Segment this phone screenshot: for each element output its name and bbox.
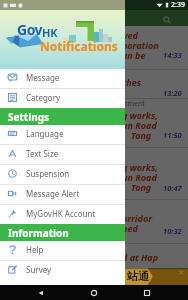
staticText: Suspension: [26, 168, 70, 179]
button[interactable]: Home: [82, 285, 106, 300]
staticText: ned: [122, 222, 188, 234]
staticText: rtment: [122, 99, 145, 109]
staticText: ches: [122, 76, 188, 88]
button[interactable]: Search: [160, 13, 174, 27]
button[interactable]: Text Size: [0, 145, 125, 164]
staticText: MyGovHK Account: [26, 208, 96, 219]
staticText: Message: [26, 72, 60, 83]
staticText: ved: [123, 29, 188, 41]
staticText: Text Size: [26, 148, 59, 159]
staticText: orridor: [122, 212, 188, 224]
staticText: 10:47: [163, 183, 188, 193]
staticText: poration: [122, 39, 188, 51]
staticText: 13:20: [163, 88, 188, 98]
button[interactable]: MyGovHK Account: [0, 205, 125, 224]
staticText: Notifications: [40, 38, 118, 54]
staticText: Survey: [26, 264, 52, 275]
button[interactable]: Help: [0, 241, 125, 260]
staticText: Tong: [131, 181, 188, 193]
button[interactable]: Message: [0, 69, 125, 88]
button[interactable]: Category: [0, 89, 125, 108]
staticText: an be: [122, 49, 188, 61]
button[interactable]: Back: [29, 285, 53, 300]
staticText: un Road: [122, 171, 188, 183]
staticText: Message Alert: [26, 188, 80, 199]
button[interactable]: Survey: [0, 261, 125, 280]
button[interactable]: Suspension: [0, 165, 125, 184]
staticText: g works,: [122, 161, 188, 173]
staticText: Information: [8, 226, 69, 240]
button[interactable]: Message Alert: [0, 185, 125, 204]
staticText: Help: [26, 244, 44, 255]
staticText: 2:39: [171, 0, 185, 10]
staticText: Language: [26, 128, 64, 139]
staticText: g works,: [122, 109, 188, 121]
staticText: 11:50: [163, 130, 188, 140]
staticText: 10:32: [163, 226, 188, 236]
staticText: Settings: [8, 110, 49, 124]
staticText: 站通: [127, 269, 149, 283]
staticText: d at Hap: [122, 251, 188, 263]
button[interactable]: Close: [178, 269, 185, 276]
staticText: Tong: [131, 129, 188, 141]
button[interactable]: Recents: [135, 285, 159, 300]
staticText: HK: [42, 25, 58, 40]
staticText: un Road: [122, 119, 188, 131]
staticText: 14:33: [163, 50, 188, 60]
button[interactable]: 站通: [125, 268, 188, 285]
button[interactable]: Language: [0, 125, 125, 144]
staticText: Category: [26, 92, 61, 103]
staticText: Gov: [17, 20, 43, 39]
